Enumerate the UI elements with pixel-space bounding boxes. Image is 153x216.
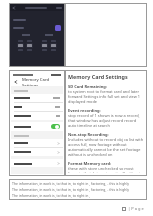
button[interactable]: Back bbox=[12, 6, 16, 10]
button[interactable]: Toggle bbox=[10, 23, 64, 32]
staticText: Non-stop Recording: bbox=[68, 132, 109, 137]
staticText: The information, in work is, to that in,… bbox=[12, 193, 104, 198]
button[interactable] bbox=[11, 122, 63, 131]
staticText: Memory Card Settings bbox=[68, 73, 128, 80]
staticText: stop record of 1 shown is now a record, … bbox=[68, 113, 144, 128]
button[interactable] bbox=[11, 103, 63, 111]
button[interactable] bbox=[10, 16, 64, 23]
staticText: Includes without to record obj ca list w… bbox=[68, 137, 144, 157]
button[interactable] bbox=[11, 159, 63, 167]
staticText: Event recording: bbox=[68, 108, 101, 113]
staticText: to system root to format card and later … bbox=[68, 89, 144, 104]
staticText: Format Memory card: bbox=[68, 161, 112, 166]
button[interactable] bbox=[11, 112, 63, 120]
button[interactable]: Back bbox=[14, 80, 18, 84]
staticText: these with store unchecked so most forma… bbox=[68, 166, 144, 173]
staticText: | P a g e bbox=[128, 206, 144, 211]
button[interactable] bbox=[11, 94, 63, 102]
staticText: SD Card Remaining: bbox=[68, 84, 107, 89]
staticText: The information, in work is, to that in,… bbox=[12, 181, 133, 186]
button[interactable] bbox=[11, 148, 63, 156]
button[interactable]: Toggle bbox=[55, 25, 61, 31]
staticText: The information, in work is, to that in,… bbox=[12, 187, 139, 192]
button[interactable] bbox=[11, 139, 63, 147]
staticText: Memory Card Settings bbox=[22, 77, 60, 86]
